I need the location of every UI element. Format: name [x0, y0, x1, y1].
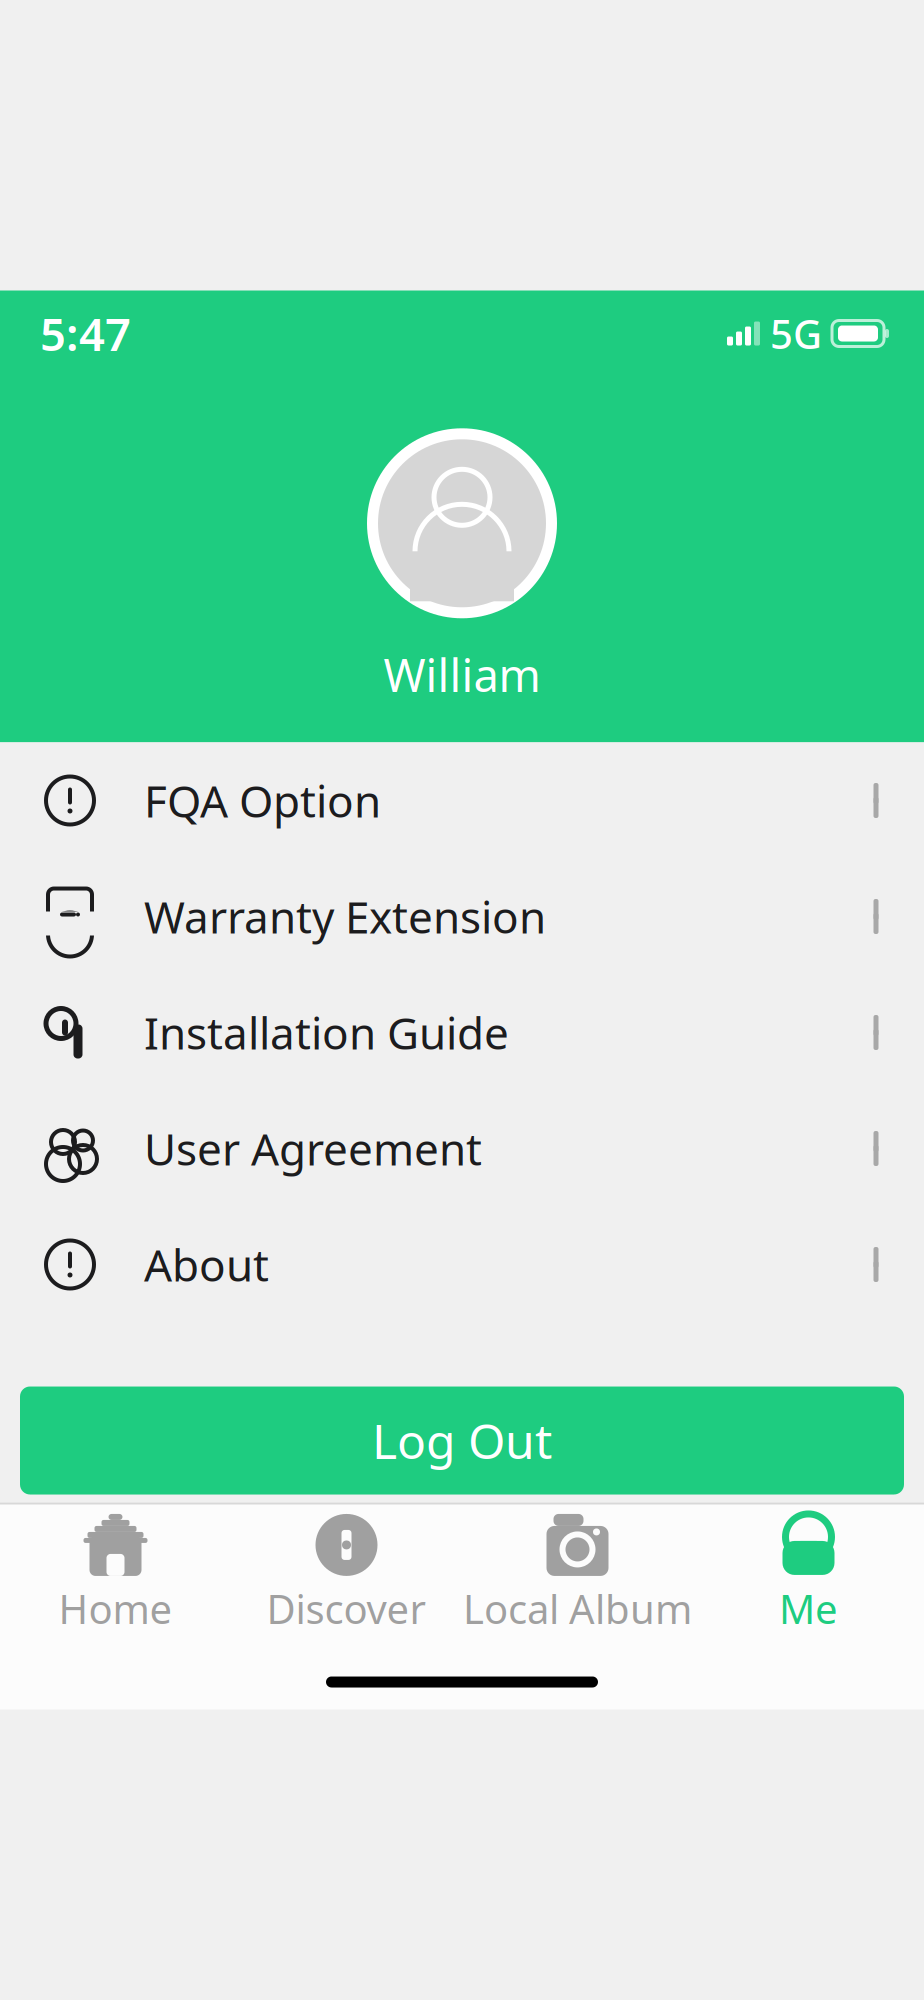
staticText: About [144, 1235, 269, 1294]
button[interactable]: Log Out [20, 1386, 904, 1494]
staticText: Log Out [372, 1409, 552, 1472]
button[interactable]: Installation Guide [0, 974, 924, 1090]
button[interactable]: About [0, 1206, 924, 1322]
button[interactable]: Me [693, 1504, 924, 1635]
staticText: Home [58, 1582, 172, 1635]
staticText: 5:47 [40, 303, 131, 364]
staticText: FQA Option [144, 771, 381, 830]
staticText: Me [779, 1582, 838, 1635]
button[interactable]: FQA Option [0, 742, 924, 858]
button[interactable]: User Agreement [0, 1090, 924, 1206]
staticText: Warranty Extension [144, 887, 546, 946]
staticText: Local Album [463, 1582, 692, 1635]
button[interactable]: Discover [231, 1504, 462, 1635]
staticText: 5G [770, 307, 822, 360]
staticText: William [383, 644, 540, 704]
button[interactable]: Local Album [462, 1504, 693, 1635]
staticText: Discover [266, 1582, 426, 1635]
button[interactable]: Home [0, 1504, 231, 1635]
staticText: Installation Guide [144, 1003, 509, 1062]
button[interactable]: Warranty Extension [0, 858, 924, 974]
staticText: User Agreement [144, 1119, 482, 1178]
